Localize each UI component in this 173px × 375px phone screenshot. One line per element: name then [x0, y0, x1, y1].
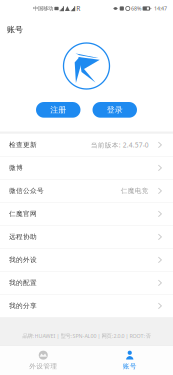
- staticText: 微博: [9, 164, 23, 172]
- button[interactable]: 检查更新: [0, 134, 173, 157]
- button[interactable]: 注册: [36, 102, 80, 118]
- button[interactable]: 外设管理: [0, 346, 86, 375]
- staticText: 仁魔官网: [9, 210, 37, 218]
- staticText: 账号: [7, 25, 23, 34]
- staticText: 账号: [123, 362, 137, 370]
- staticText: 我的分享: [9, 302, 37, 310]
- staticText: 外设管理: [29, 362, 57, 370]
- staticText: 注册: [50, 105, 66, 115]
- button[interactable]: 远程协助: [0, 226, 173, 249]
- button[interactable]: 仁魔官网: [0, 203, 173, 226]
- staticText: R: [76, 4, 80, 13]
- staticText: 品牌: HUAWEI | 型号: SPN-AL00 | 网页: 2.0.0 | …: [22, 332, 150, 339]
- staticText: 中国移动: [33, 5, 53, 12]
- staticText: 仁魔电竞: [121, 187, 149, 195]
- button[interactable]: 登录: [92, 102, 137, 118]
- button[interactable]: 我的外设: [0, 249, 173, 272]
- staticText: 我的外设: [9, 256, 37, 264]
- staticText: 当前版本: 2.4.57-0: [91, 140, 149, 149]
- button[interactable]: 我的配置: [0, 272, 173, 295]
- button[interactable]: 账号: [86, 346, 173, 375]
- staticText: 微信公众号: [9, 187, 44, 195]
- staticText: 我的配置: [9, 279, 37, 287]
- staticText: 登录: [107, 105, 123, 115]
- button[interactable]: 微博: [0, 157, 173, 180]
- button[interactable]: 我的分享: [0, 295, 173, 318]
- staticText: 68%: [131, 5, 141, 12]
- staticText: 远程协助: [9, 233, 37, 241]
- staticText: 14:47: [154, 5, 167, 12]
- staticText: 检查更新: [9, 141, 37, 149]
- button[interactable]: 微信公众号: [0, 180, 173, 203]
